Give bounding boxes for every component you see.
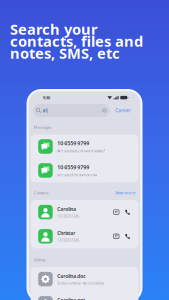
staticText: 9:30 [43, 95, 50, 100]
staticText: View more [115, 190, 135, 195]
staticText: 10 6559 9799 [57, 139, 89, 147]
button[interactable]: Carolina.doc [31, 267, 138, 291]
staticText: are you free tomorrow [57, 172, 97, 177]
button[interactable]: 10 6559 9799 [31, 134, 138, 158]
button[interactable]: Message Christar [113, 233, 120, 240]
staticText: 10 6559 9799 [57, 163, 89, 171]
staticText: Cancel [115, 107, 130, 114]
button[interactable]: Cancel [114, 104, 131, 117]
staticText: Carolina.ppt [57, 297, 85, 300]
staticText: Carolina [57, 206, 76, 212]
button[interactable]: Call Christar [124, 233, 131, 240]
staticText: Contacts [34, 190, 49, 195]
staticText: Messages [34, 124, 52, 130]
button[interactable]: 10 6559 9799 [31, 158, 138, 182]
staticText: Carolina.doc [57, 273, 85, 279]
staticText: 13125551245 [57, 238, 79, 243]
button[interactable]: Carolina.ppt [31, 291, 138, 300]
button[interactable]: Message Carolina [113, 209, 120, 215]
button[interactable]: Call Carolina [124, 209, 131, 215]
staticText: Setting [34, 257, 45, 262]
staticText: 13125551245 [57, 214, 79, 218]
staticText: Are you busy at work today? [57, 148, 105, 153]
staticText: Christar [57, 230, 75, 236]
staticText: Screen setting • Accessibility [57, 281, 104, 285]
button[interactable]: View more [115, 190, 135, 195]
staticText: a [43, 107, 46, 114]
staticText: Search your contacts, files and notes, S… [10, 23, 143, 59]
